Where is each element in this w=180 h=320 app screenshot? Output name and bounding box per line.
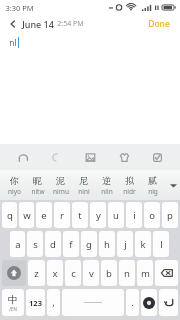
button[interactable]: p <box>162 202 178 228</box>
button[interactable]: q <box>2 202 17 228</box>
button[interactable]: z <box>28 260 45 286</box>
staticText: nimu <box>53 187 69 196</box>
button[interactable]: 昵 <box>26 170 49 200</box>
staticText: nini <box>78 187 90 196</box>
button[interactable]: b <box>101 260 117 286</box>
button[interactable]: 拟 <box>118 170 141 200</box>
staticText: /EN <box>9 306 17 312</box>
staticText: 你 <box>10 175 19 186</box>
button[interactable]: i <box>126 202 142 228</box>
staticText: 拟 <box>125 175 134 186</box>
staticText: a <box>15 238 21 251</box>
staticText: o <box>149 209 155 222</box>
button[interactable]: m <box>137 260 153 286</box>
staticText: nitw <box>31 187 45 196</box>
button[interactable]: Space <box>62 289 124 316</box>
staticText: nidr <box>123 187 136 196</box>
staticText: 腻 <box>148 175 157 186</box>
button[interactable]: , <box>47 289 60 316</box>
staticText: q <box>7 209 13 222</box>
staticText: j <box>124 238 127 251</box>
button[interactable]: Emoji <box>141 289 157 316</box>
staticText: f <box>69 238 73 251</box>
button[interactable]: Done <box>144 16 174 32</box>
button[interactable]: w <box>19 202 34 228</box>
button[interactable]: . <box>126 289 139 316</box>
button[interactable]: Checklist <box>146 146 168 168</box>
button[interactable]: d <box>45 231 61 257</box>
button[interactable]: g <box>81 231 97 257</box>
button[interactable]: Backspace <box>155 260 178 286</box>
button[interactable]: c <box>65 260 81 286</box>
button[interactable]: 泥 <box>49 170 72 200</box>
staticText: w <box>23 209 31 222</box>
staticText: 2:54 PM <box>57 19 84 29</box>
staticText: g <box>86 238 92 251</box>
staticText: s <box>33 238 38 251</box>
staticText: k <box>140 238 146 251</box>
button[interactable]: o <box>144 202 160 228</box>
button[interactable]: Redo <box>45 146 67 168</box>
staticText: 逆 <box>102 175 111 186</box>
button[interactable]: h <box>99 231 115 257</box>
button[interactable]: Shift <box>2 260 26 286</box>
staticText: . <box>131 296 134 309</box>
button[interactable]: u <box>108 202 124 228</box>
button[interactable]: l <box>153 231 169 257</box>
staticText: h <box>104 238 110 251</box>
button[interactable]: a <box>10 231 25 257</box>
button[interactable]: 尼 <box>72 170 95 200</box>
button[interactable]: r <box>54 202 70 228</box>
button[interactable]: x <box>47 260 63 286</box>
staticText: niyo <box>8 187 21 196</box>
staticText: 昵 <box>33 175 42 186</box>
button[interactable]: s <box>27 231 43 257</box>
staticText: r <box>60 209 64 222</box>
staticText: z <box>34 267 39 280</box>
staticText: e <box>41 209 47 222</box>
staticText: i <box>133 209 136 222</box>
button[interactable]: y <box>90 202 106 228</box>
staticText: m <box>141 267 150 280</box>
button[interactable]: e <box>36 202 52 228</box>
staticText: 泥 <box>56 175 65 186</box>
button[interactable]: Switch language <box>2 289 24 316</box>
button[interactable]: f <box>63 231 79 257</box>
button[interactable]: Back <box>6 17 20 31</box>
staticText: , <box>52 296 55 309</box>
staticText: n <box>124 267 130 280</box>
staticText: June 14 <box>22 18 54 30</box>
staticText: b <box>106 267 112 280</box>
button[interactable]: v <box>83 260 99 286</box>
staticText: l <box>160 238 163 251</box>
staticText: p <box>167 209 173 222</box>
button[interactable]: Enter <box>159 289 178 316</box>
button[interactable]: Undo <box>12 146 34 168</box>
staticText: 尼 <box>79 175 88 186</box>
staticText: Done <box>148 18 170 30</box>
staticText: x <box>52 267 58 280</box>
button[interactable]: 腻 <box>141 170 164 200</box>
staticText: 3:30 PM <box>5 3 34 13</box>
staticText: v <box>89 267 94 280</box>
staticText: d <box>50 238 56 251</box>
button[interactable]: 123 <box>26 289 45 316</box>
button[interactable]: Theme <box>113 146 135 168</box>
staticText: nl <box>9 37 17 49</box>
button[interactable]: t <box>72 202 88 228</box>
staticText: niin <box>101 187 113 196</box>
button[interactable]: Insert image <box>79 146 101 168</box>
button[interactable]: k <box>135 231 151 257</box>
staticText: nig <box>148 187 158 196</box>
staticText: 中 <box>8 293 18 306</box>
staticText: u <box>113 209 119 222</box>
button[interactable]: 逆 <box>95 170 118 200</box>
staticText: c <box>71 267 76 280</box>
button[interactable]: More candidates <box>166 178 180 192</box>
button[interactable]: n <box>119 260 135 286</box>
staticText: 123 <box>29 298 42 308</box>
staticText: y <box>96 209 101 222</box>
button[interactable]: 你 <box>2 170 26 200</box>
button[interactable]: j <box>117 231 133 257</box>
staticText: t <box>78 209 82 222</box>
